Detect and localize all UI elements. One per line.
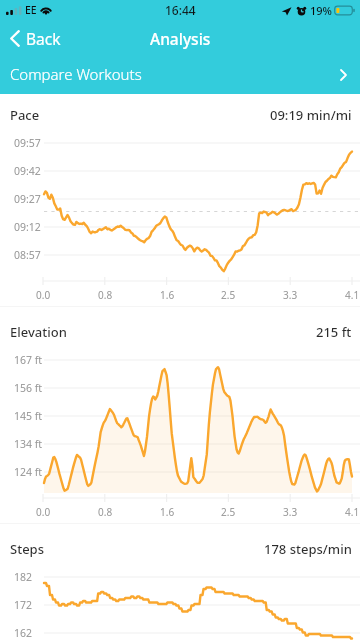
staticText: 0.0 (36, 288, 51, 302)
staticText: 09:12 (14, 220, 41, 234)
staticText: 4.1 (345, 288, 360, 302)
staticText: 124 ft (14, 465, 43, 479)
staticText: 4.1 (345, 505, 360, 519)
staticText: 09:27 (14, 192, 41, 206)
staticText: Steps (10, 540, 44, 558)
staticText: 134 ft (14, 437, 43, 451)
staticText: 08:57 (14, 248, 41, 262)
staticText: 172 (14, 598, 33, 612)
staticText: 3.3 (283, 505, 298, 519)
staticText: EE (25, 3, 37, 17)
staticText: 182 (14, 570, 33, 584)
staticText: Elevation (10, 323, 67, 341)
staticText: 156 ft (14, 381, 43, 395)
staticText: 1.6 (160, 505, 175, 519)
staticText: Back (26, 28, 61, 49)
staticText: Pace (10, 106, 40, 124)
staticText: 2.5 (221, 288, 236, 302)
staticText: 0.8 (98, 288, 113, 302)
staticText: 09:42 (14, 164, 41, 178)
staticText: 09:19 min/mi (270, 106, 352, 124)
button[interactable]: Back (0, 22, 73, 55)
staticText: 16:44 (165, 2, 196, 18)
staticText: 1.6 (160, 288, 175, 302)
staticText: 178 steps/min (264, 540, 352, 558)
staticText: 19% (310, 3, 332, 18)
staticText: Analysis (150, 28, 211, 49)
staticText: 145 ft (14, 409, 43, 423)
staticText: Compare Workouts (10, 64, 142, 84)
staticText: 162 (14, 626, 33, 640)
staticText: 167 ft (14, 353, 43, 367)
staticText: 2.5 (221, 505, 236, 519)
staticText: 3.3 (283, 288, 298, 302)
other: Open compare workouts (340, 69, 347, 81)
staticText: 0.0 (36, 505, 51, 519)
staticText: 215 ft (316, 323, 352, 341)
staticText: 09:57 (14, 136, 41, 150)
staticText: 0.8 (98, 505, 113, 519)
button[interactable]: Compare Workouts (0, 56, 360, 94)
